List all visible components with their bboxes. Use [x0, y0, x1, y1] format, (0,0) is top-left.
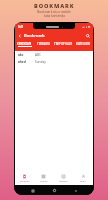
staticText: KATEGORI: [76, 42, 91, 46]
staticText: Sunday: [35, 60, 46, 64]
staticText: KEKINIAN: [17, 42, 32, 46]
button[interactable]: Search: [85, 33, 91, 39]
button[interactable]: KEKINIAN: [15, 40, 34, 51]
staticText: Bookmark situs mobile: [37, 10, 71, 14]
button[interactable]: Recents: [30, 188, 35, 193]
staticText: kata kontenda: [44, 14, 65, 18]
staticText: Beranda: [20, 179, 30, 182]
button[interactable]: Terbaru: [53, 169, 73, 185]
staticText: TERBARU: [37, 42, 50, 46]
staticText: Terbaru: [59, 179, 68, 182]
staticText: ABC: [35, 53, 41, 57]
staticText: Akun: [80, 179, 86, 182]
button[interactable]: Beranda: [15, 169, 34, 185]
staticText: abc: [18, 53, 24, 57]
staticText: ahed: [18, 60, 26, 64]
button[interactable]: Home: [52, 188, 57, 193]
button[interactable]: TERPOPULER: [53, 40, 73, 51]
button[interactable]: ahed: [15, 60, 93, 64]
button[interactable]: Akun: [73, 169, 93, 185]
button[interactable]: Back: [17, 33, 23, 39]
staticText: Pilihan: [40, 179, 48, 182]
button[interactable]: Back: [73, 188, 78, 193]
button[interactable]: abc: [15, 53, 93, 57]
staticText: TERPOPULER: [54, 42, 73, 46]
button[interactable]: KATEGORI: [73, 40, 93, 51]
button[interactable]: TERBARU: [34, 40, 53, 51]
staticText: 9:41: [18, 25, 24, 29]
staticText: BOOKMARK: [34, 2, 75, 10]
button[interactable]: Pilihan: [34, 169, 53, 185]
staticText: Bookmark: [24, 33, 45, 39]
